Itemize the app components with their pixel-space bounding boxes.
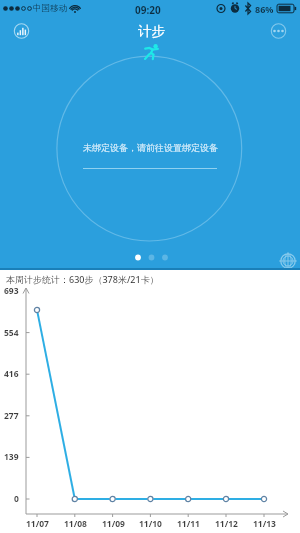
staticText: 277 [4, 410, 19, 422]
staticText: 11/08 [64, 518, 87, 530]
staticText: 693 [4, 285, 19, 297]
staticText: 11/07 [26, 518, 49, 530]
button[interactable]: More options [264, 17, 292, 45]
staticText: 中国移动 [33, 3, 68, 14]
staticText: 本周计步统计：630步（378米/21卡） [6, 273, 159, 285]
staticText: 139 [4, 451, 19, 463]
button[interactable]: Statistics [7, 17, 35, 45]
staticText: 11/11 [177, 518, 200, 530]
staticText: 0 [14, 493, 19, 505]
staticText: 09:20 [135, 3, 161, 17]
button[interactable]: Locate [276, 249, 300, 273]
staticText: 计步 [138, 23, 165, 40]
staticText: 11/13 [253, 518, 276, 530]
staticText: 11/09 [102, 518, 125, 530]
staticText: 416 [4, 368, 19, 380]
staticText: 86% [255, 3, 274, 15]
staticText: 11/12 [215, 518, 238, 530]
staticText: 11/10 [139, 518, 162, 530]
staticText: 未绑定设备，请前往设置绑定设备 [83, 142, 218, 153]
staticText: 554 [4, 327, 19, 339]
